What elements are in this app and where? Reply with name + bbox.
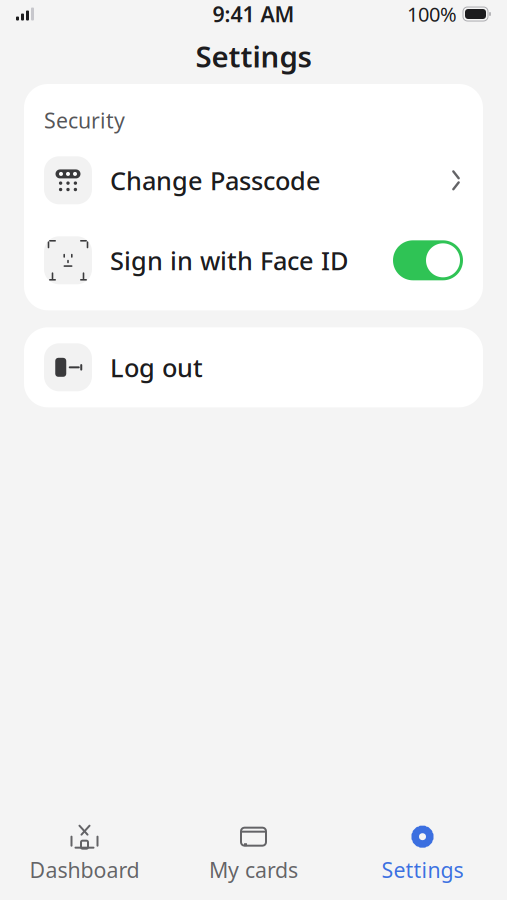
staticText: Settings [381, 856, 463, 884]
staticText: My cards [209, 856, 298, 884]
staticText: 9:41 AM [212, 0, 294, 28]
staticText: Dashboard [29, 856, 139, 884]
staticText: Log out [110, 350, 203, 384]
button[interactable]: Settings [338, 818, 507, 890]
button[interactable]: Sign in with Face ID [24, 220, 483, 300]
staticText: Security [44, 106, 125, 134]
staticText: 100% [407, 1, 457, 27]
staticText: Sign in with Face ID [110, 243, 349, 277]
button[interactable]: My cards [169, 818, 338, 890]
button[interactable]: Change Passcode [24, 140, 483, 220]
button[interactable]: Dashboard [0, 818, 169, 890]
staticText: Settings [195, 36, 311, 75]
button[interactable]: Log out [24, 327, 483, 407]
staticText: Change Passcode [110, 163, 321, 197]
